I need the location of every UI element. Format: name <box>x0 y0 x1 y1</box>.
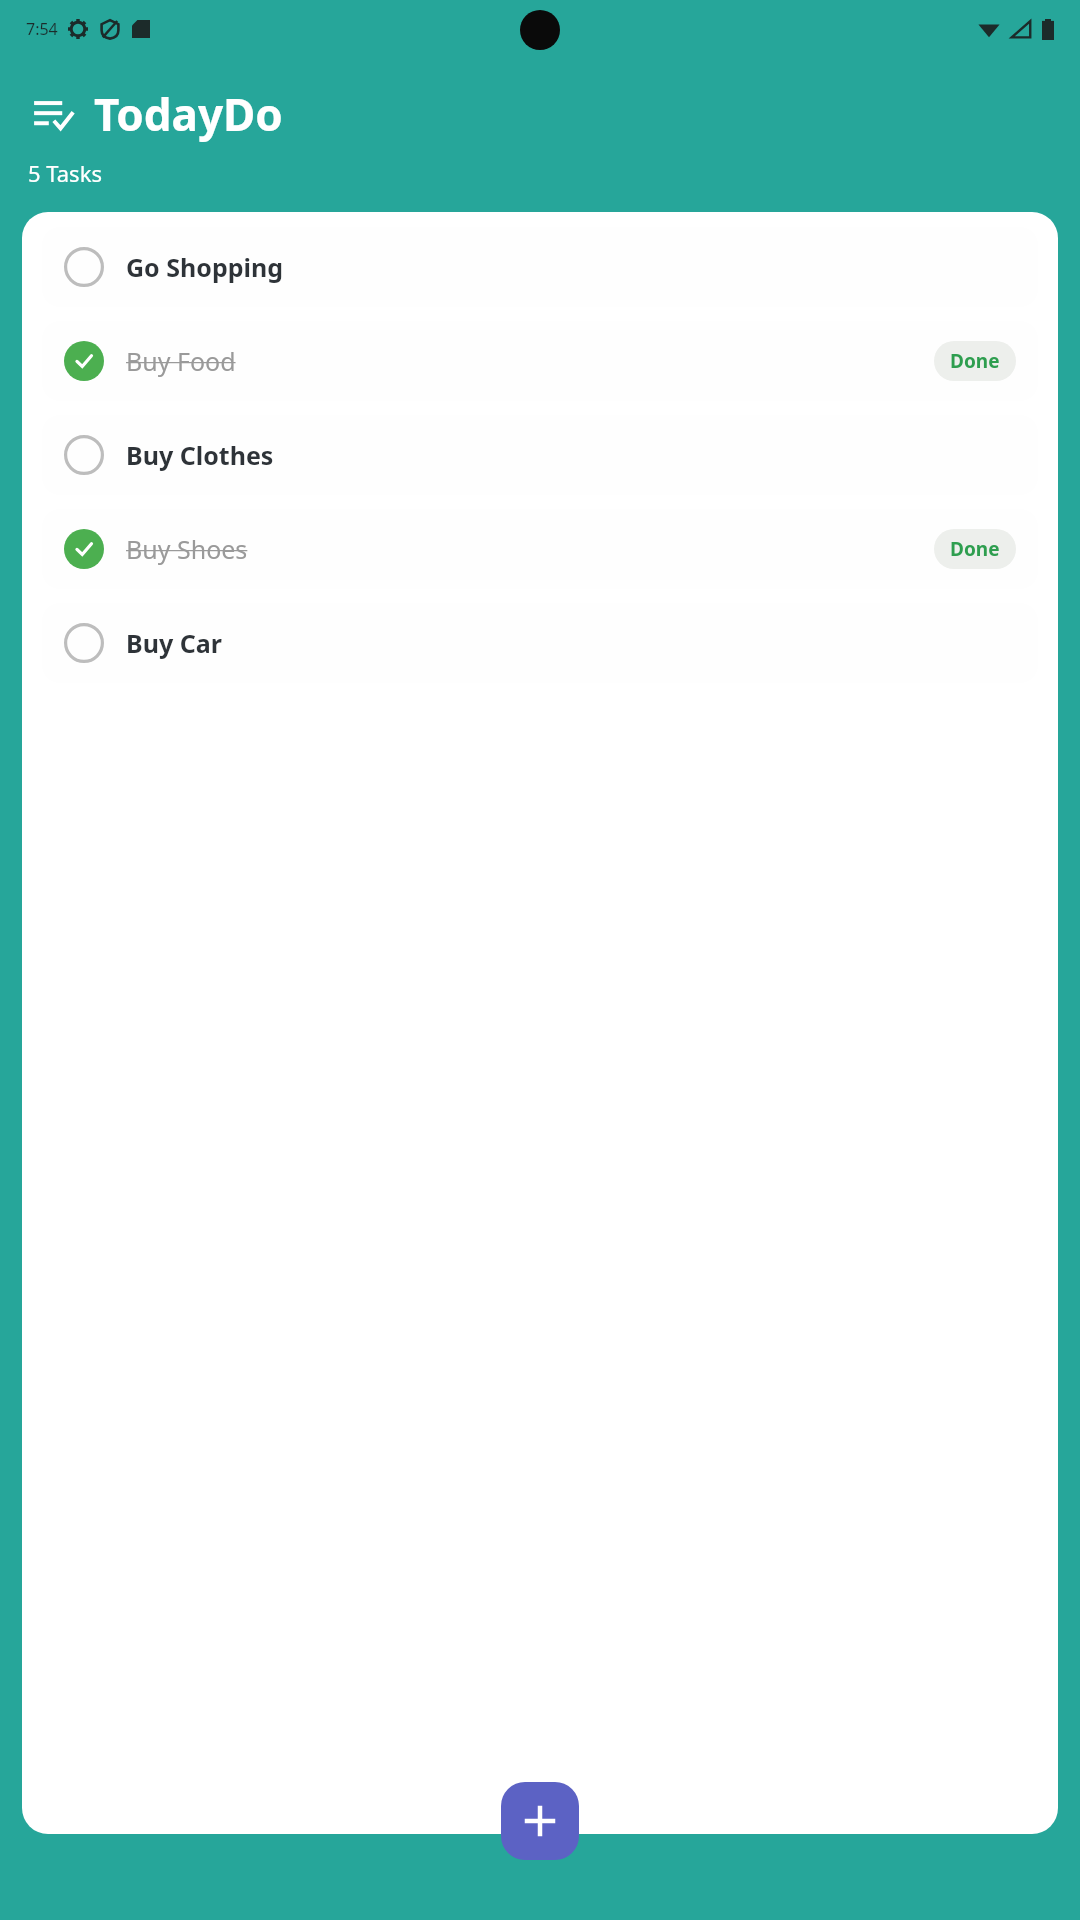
button[interactable]: Buy Food <box>42 321 1038 401</box>
staticText: Done <box>950 348 1000 374</box>
button[interactable]: Buy Clothes <box>42 415 1038 495</box>
staticText: Buy Clothes <box>126 438 274 472</box>
staticText: Buy Food <box>126 344 236 378</box>
staticText: Buy Shoes <box>126 532 248 566</box>
button[interactable]: Buy Shoes <box>42 509 1038 589</box>
staticText: Go Shopping <box>126 250 284 284</box>
button[interactable]: Buy Car <box>42 603 1038 683</box>
staticText: Buy Car <box>126 626 222 660</box>
staticText: TodayDo <box>94 84 283 144</box>
staticText: 5 Tasks <box>28 158 102 188</box>
staticText: 7:54 <box>26 18 58 40</box>
button[interactable]: Task list menu <box>28 89 78 139</box>
button[interactable]: Add task <box>501 1782 579 1860</box>
button[interactable]: Go Shopping <box>42 227 1038 307</box>
staticText: Done <box>950 536 1000 562</box>
